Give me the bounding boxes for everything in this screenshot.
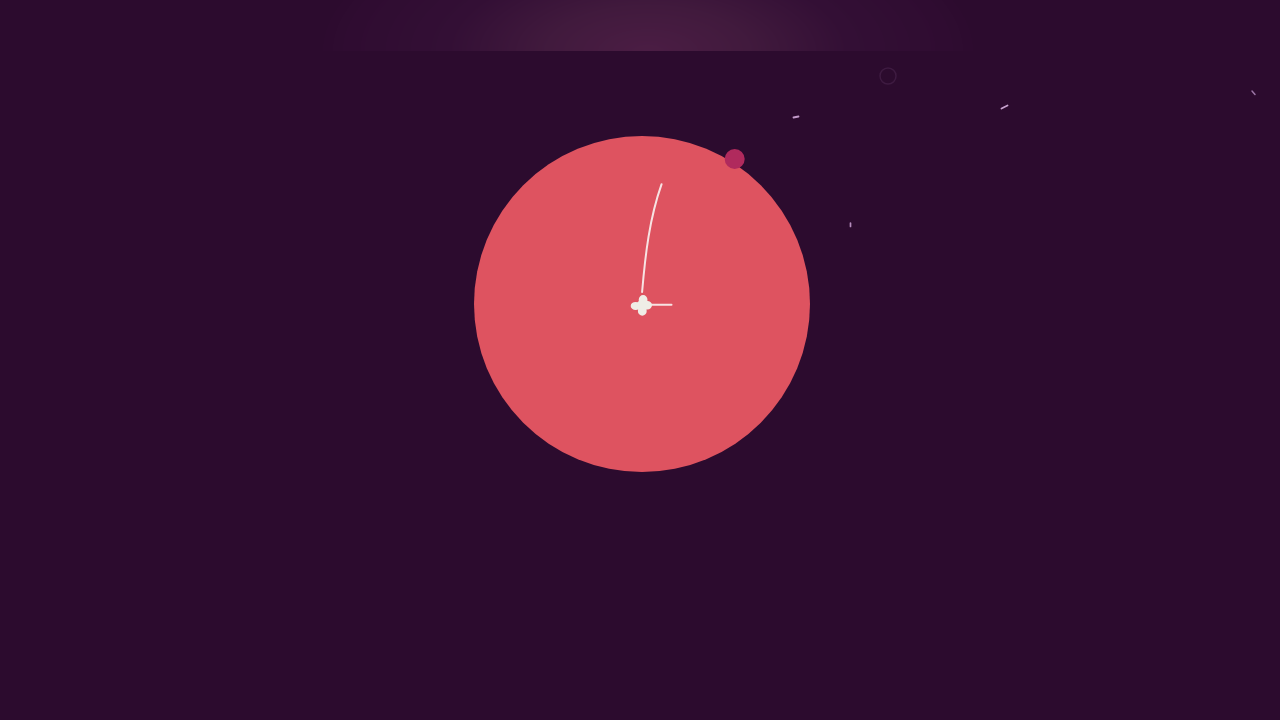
button[interactable]: Clock dial (474, 136, 810, 472)
button[interactable]: Alarm bubble (725, 149, 745, 169)
